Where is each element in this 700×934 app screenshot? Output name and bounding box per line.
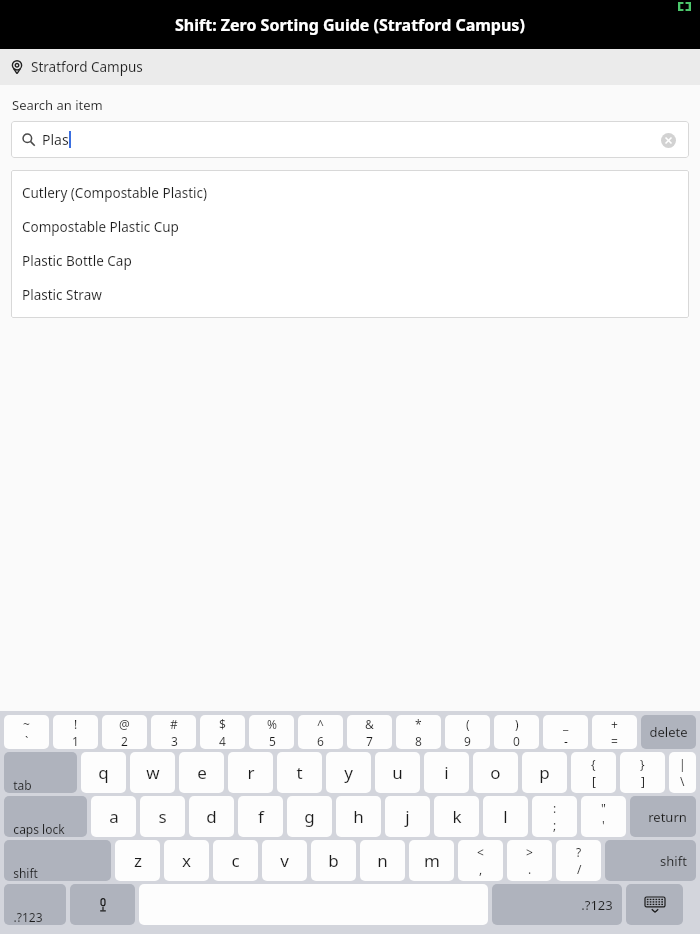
button[interactable]: h	[336, 796, 381, 837]
staticText: .?123	[13, 909, 43, 925]
button[interactable]: z	[115, 840, 160, 881]
staticText: 8	[415, 733, 422, 749]
staticText: Plastic Bottle Cap	[22, 252, 132, 270]
button[interactable]: m	[409, 840, 454, 881]
staticText: a	[109, 805, 119, 828]
button[interactable]: q	[81, 752, 126, 793]
staticText: n	[377, 849, 388, 872]
button[interactable]: |	[669, 752, 696, 793]
button[interactable]: ^	[298, 715, 343, 749]
button[interactable]: _	[543, 715, 588, 749]
button[interactable]: g	[287, 796, 332, 837]
staticText: return	[648, 808, 687, 826]
staticText: ?	[576, 844, 582, 860]
button[interactable]: {	[571, 752, 616, 793]
button[interactable]: :	[532, 796, 577, 837]
staticText: s	[158, 805, 167, 828]
staticText: <	[477, 844, 484, 860]
staticText: #	[170, 716, 178, 732]
button[interactable]: w	[130, 752, 175, 793]
button[interactable]: ~	[4, 715, 49, 749]
button[interactable]: Cutlery (Compostable Plastic)	[11, 176, 689, 210]
staticText: &	[365, 716, 374, 732]
staticText: f	[258, 805, 264, 828]
button[interactable]: !	[53, 715, 98, 749]
button[interactable]: c	[213, 840, 258, 881]
staticText: y	[344, 761, 353, 784]
button[interactable]: d	[189, 796, 234, 837]
staticText: ]	[641, 773, 645, 789]
staticText: {	[591, 756, 596, 772]
button[interactable]: ?	[556, 840, 601, 881]
button[interactable]: o	[473, 752, 518, 793]
button[interactable]: i	[424, 752, 469, 793]
button[interactable]: a	[91, 796, 136, 837]
button[interactable]: e	[179, 752, 224, 793]
staticText: /	[577, 861, 582, 877]
button[interactable]: y	[326, 752, 371, 793]
button[interactable]: %	[249, 715, 294, 749]
button[interactable]: x	[164, 840, 209, 881]
button[interactable]: Compostable Plastic Cup	[11, 210, 689, 244]
button[interactable]: +	[592, 715, 637, 749]
staticText: "	[601, 800, 606, 816]
button[interactable]: t	[277, 752, 322, 793]
button[interactable]: >	[507, 840, 552, 881]
button[interactable]: tab	[4, 752, 77, 793]
staticText: .	[528, 861, 532, 877]
staticText: x	[182, 849, 191, 872]
button[interactable]: Plastic Bottle Cap	[11, 244, 689, 278]
staticText: caps lock	[13, 821, 65, 837]
button[interactable]: j	[385, 796, 430, 837]
button[interactable]: r	[228, 752, 273, 793]
button[interactable]: (	[445, 715, 490, 749]
button[interactable]: )	[494, 715, 539, 749]
staticText: Plastic Straw	[22, 286, 102, 304]
button[interactable]: <	[458, 840, 503, 881]
staticText: shift	[660, 852, 687, 870]
button[interactable]: u	[375, 752, 420, 793]
button[interactable]: &	[347, 715, 392, 749]
button[interactable]: "	[581, 796, 626, 837]
button[interactable]: Plastic Straw	[11, 278, 689, 312]
staticText: p	[539, 761, 550, 784]
button[interactable]: l	[483, 796, 528, 837]
staticText: t	[296, 761, 303, 784]
staticText: [	[592, 773, 596, 789]
staticText: \	[680, 773, 685, 789]
button[interactable]: delete	[641, 715, 696, 749]
staticText: v	[280, 849, 289, 872]
staticText: :	[553, 800, 557, 816]
staticText: Compostable Plastic Cup	[22, 218, 179, 236]
button[interactable]: s	[140, 796, 185, 837]
button[interactable]: f	[238, 796, 283, 837]
staticText: b	[328, 849, 339, 872]
button[interactable]	[626, 884, 683, 925]
button[interactable]: Plas	[11, 121, 689, 158]
button[interactable]: caps lock	[4, 796, 87, 837]
button[interactable]: @	[102, 715, 147, 749]
button[interactable]: shift	[4, 840, 111, 881]
button[interactable]: .?123	[4, 884, 66, 925]
button[interactable]: #	[151, 715, 196, 749]
button[interactable]: }	[620, 752, 665, 793]
button[interactable]: b	[311, 840, 356, 881]
button[interactable]: return	[630, 796, 696, 837]
button[interactable]	[70, 884, 135, 925]
button[interactable]: n	[360, 840, 405, 881]
button[interactable]: $	[200, 715, 245, 749]
staticText: m	[424, 849, 440, 872]
button[interactable]: Stratford Campus	[0, 49, 700, 85]
staticText: r	[247, 761, 255, 784]
staticText: Cutlery (Compostable Plastic)	[22, 184, 208, 202]
staticText: e	[197, 761, 207, 784]
button[interactable]: shift	[605, 840, 696, 881]
button[interactable]: k	[434, 796, 479, 837]
button[interactable]: *	[396, 715, 441, 749]
button[interactable]: .?123	[492, 884, 622, 925]
staticText: ^	[317, 716, 324, 732]
button[interactable]: v	[262, 840, 307, 881]
button[interactable]: p	[522, 752, 567, 793]
button[interactable]: Clear search	[658, 130, 678, 150]
